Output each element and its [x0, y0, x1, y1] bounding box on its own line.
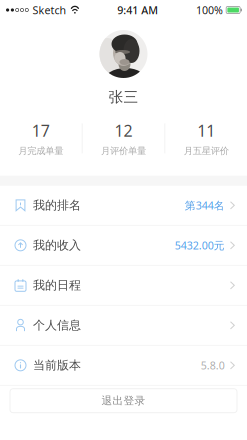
staticText: 5.8.0 — [201, 358, 225, 372]
staticText: 张三 — [108, 88, 138, 106]
staticText: 月完成单量 — [18, 145, 63, 157]
button[interactable]: 我的排名 — [0, 186, 247, 226]
staticText: 11 — [197, 120, 215, 141]
staticText: 100% — [196, 3, 223, 17]
staticText: 9:41 AM — [117, 3, 158, 17]
staticText: 月评价单量 — [101, 145, 146, 157]
button[interactable]: 当前版本 — [0, 346, 247, 386]
staticText: 我的收入 — [33, 238, 81, 253]
button[interactable]: 我的日程 — [0, 266, 247, 306]
staticText: Sketch — [32, 3, 66, 17]
staticText: 当前版本 — [33, 358, 81, 373]
staticText: 退出登录 — [101, 394, 145, 407]
staticText: 第344名 — [185, 198, 225, 212]
button[interactable]: 个人信息 — [0, 306, 247, 346]
staticText: 个人信息 — [33, 318, 81, 333]
staticText: 我的排名 — [33, 198, 81, 213]
staticText: 我的日程 — [33, 278, 81, 293]
staticText: 5432.00元 — [175, 238, 225, 252]
button[interactable]: 退出登录 — [0, 389, 247, 413]
staticText: 12 — [114, 120, 132, 141]
staticText: 17 — [32, 120, 50, 141]
staticText: 月五星评价 — [184, 145, 229, 157]
button[interactable]: 我的收入 — [0, 226, 247, 266]
